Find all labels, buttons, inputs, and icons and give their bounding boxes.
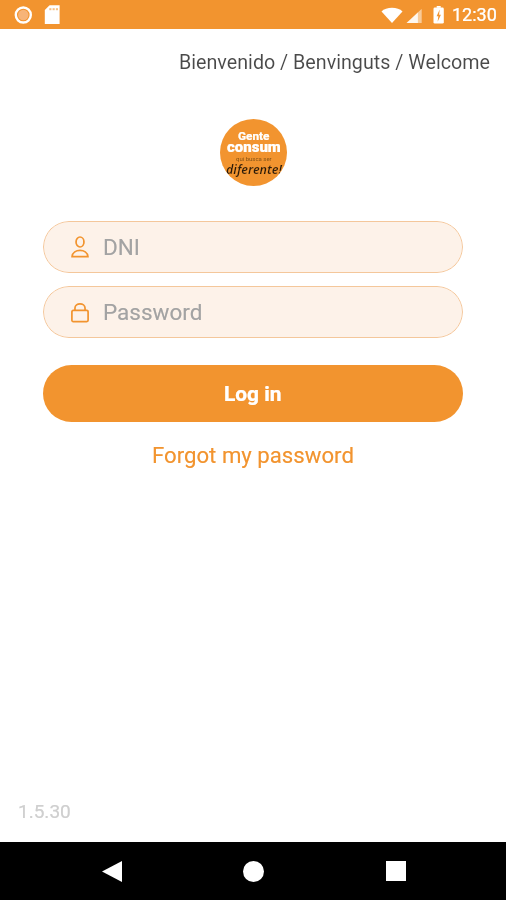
button[interactable]: Back: [83, 842, 141, 900]
button[interactable]: Log in: [43, 365, 463, 422]
staticText: Gente: [238, 129, 270, 143]
staticText: consum: [227, 138, 281, 156]
button[interactable]: Forgot my password: [142, 437, 364, 473]
staticText: Bienvenido / Benvinguts / Welcome: [179, 51, 490, 74]
staticText: diferente!: [226, 161, 282, 178]
staticText: 1.5.30: [18, 800, 71, 822]
button[interactable]: Home: [224, 842, 282, 900]
staticText: 12:30: [452, 4, 497, 25]
staticText: Password: [103, 299, 203, 325]
staticText: DNI: [103, 234, 140, 260]
button[interactable]: DNI: [43, 221, 463, 273]
staticText: Forgot my password: [152, 442, 354, 468]
staticText: qui busca ser: [236, 155, 272, 162]
staticText: Log in: [224, 382, 282, 406]
button[interactable]: Recent apps: [367, 842, 425, 900]
button[interactable]: Password: [43, 286, 463, 338]
